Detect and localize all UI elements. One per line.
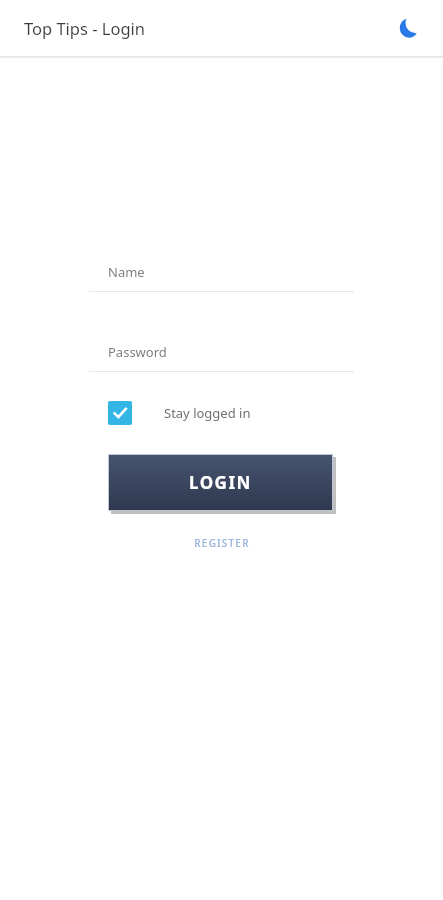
staticText: Name <box>108 263 145 281</box>
staticText: LOGIN <box>189 471 252 494</box>
button[interactable]: REGISTER <box>182 531 262 555</box>
staticText: Top Tips - Login <box>24 17 146 39</box>
button[interactable]: Stay logged in checkbox <box>89 397 354 429</box>
button[interactable]: Name <box>89 253 354 292</box>
other: Stay logged in checkbox <box>108 401 132 425</box>
staticText: REGISTER <box>194 536 250 550</box>
staticText: Password <box>108 343 167 361</box>
button[interactable]: LOGIN <box>109 455 332 510</box>
staticText: Stay logged in <box>164 404 251 422</box>
button[interactable]: Password <box>89 333 354 372</box>
button[interactable]: Toggle dark mode <box>389 8 429 48</box>
